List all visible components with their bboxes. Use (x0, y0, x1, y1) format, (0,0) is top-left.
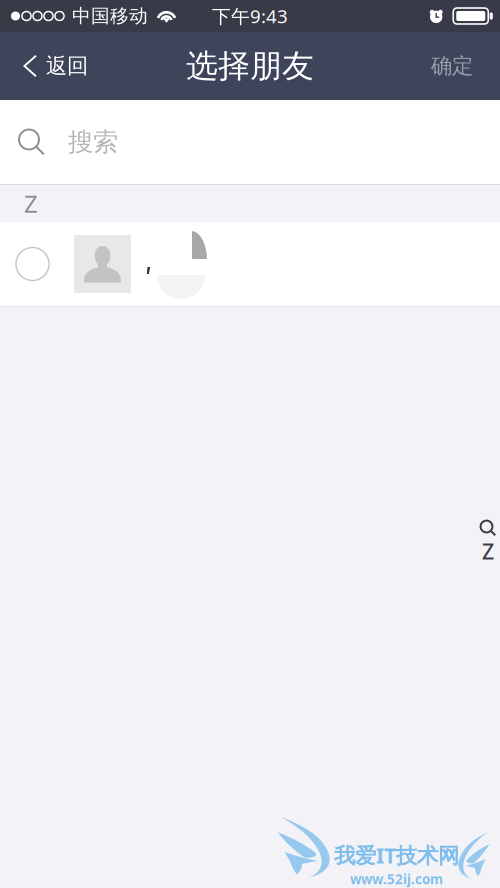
button[interactable]: 返回 (0, 32, 100, 100)
button[interactable]: Section index (478, 520, 498, 565)
staticText: Z (24, 188, 38, 219)
staticText: www.52ij.com (350, 870, 443, 888)
staticText: 中国移动 (72, 4, 148, 27)
staticText: 确定 (431, 53, 473, 79)
button[interactable] (0, 222, 500, 306)
staticText: 选择朋友 (186, 46, 314, 86)
button[interactable]: 搜索 (0, 100, 500, 184)
staticText: Z (482, 537, 494, 565)
staticText: 返回 (46, 53, 88, 79)
staticText: 下午9:43 (212, 4, 288, 28)
button[interactable]: 确定 (417, 32, 500, 100)
staticText: 搜索 (68, 126, 118, 157)
staticText: 我爱IT技术网 (334, 841, 459, 869)
